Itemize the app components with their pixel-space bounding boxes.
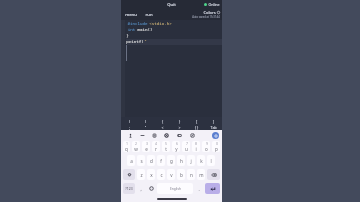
- staticText: n: [190, 172, 193, 178]
- staticText: (: [128, 119, 131, 124]
- staticText: 4: [155, 142, 157, 146]
- button[interactable]: d: [147, 155, 155, 166]
- button[interactable]: (: [121, 118, 137, 124]
- staticText: 0: [216, 142, 218, 146]
- button[interactable]: ;: [121, 124, 137, 130]
- button[interactable]: h: [177, 155, 185, 166]
- button[interactable]: }: [171, 118, 188, 124]
- button[interactable]: n: [187, 169, 195, 180]
- button[interactable]: 6: [172, 141, 180, 152]
- button[interactable]: m: [197, 169, 205, 180]
- staticText: 5: [165, 142, 167, 146]
- staticText: p: [215, 146, 218, 152]
- staticText: k: [200, 158, 203, 164]
- button[interactable]: 1: [123, 141, 130, 152]
- staticText: d: [150, 158, 153, 164]
- staticText: }: [178, 119, 181, 124]
- staticText: 3: [146, 142, 148, 146]
- button[interactable]: s: [137, 155, 145, 166]
- staticText: int: [126, 27, 137, 33]
- staticText: }: [126, 33, 129, 39]
- staticText: 6: [176, 142, 178, 146]
- staticText: e: [145, 146, 148, 152]
- button[interactable]: >: [171, 124, 188, 130]
- button[interactable]: English: [157, 183, 193, 194]
- button[interactable]: v: [167, 169, 175, 180]
- button[interactable]: 9: [202, 141, 210, 152]
- button[interactable]: Stickers: [173, 130, 186, 140]
- button[interactable]: Search: [212, 132, 219, 139]
- button[interactable]: Emoji: [146, 182, 156, 195]
- button[interactable]: Backspace: [207, 169, 220, 180]
- button[interactable]: Period: [194, 182, 204, 195]
- button[interactable]: ?123: [123, 183, 135, 194]
- staticText: {}: [194, 125, 199, 130]
- button[interactable]: 8: [192, 141, 200, 152]
- staticText: h: [180, 158, 183, 164]
- button[interactable]: 2: [132, 141, 140, 152]
- button[interactable]: b: [177, 169, 185, 180]
- button[interactable]: More: [136, 130, 148, 140]
- staticText: .: [198, 186, 200, 192]
- staticText: >: [178, 125, 181, 130]
- button[interactable]: x: [147, 169, 155, 180]
- staticText: ): [144, 119, 147, 124]
- button[interactable]: k: [197, 155, 205, 166]
- button[interactable]: Quit: [164, 1, 179, 9]
- button[interactable]: Clipboard: [148, 130, 160, 140]
- staticText: Quit: [167, 2, 176, 8]
- staticText: Online: [208, 2, 220, 7]
- button[interactable]: 0: [212, 141, 220, 152]
- staticText: g: [170, 158, 173, 164]
- button[interactable]: menu: [123, 11, 139, 19]
- button[interactable]: Translate: [186, 130, 199, 140]
- button[interactable]: c: [157, 169, 165, 180]
- button[interactable]: j: [187, 155, 195, 166]
- staticText: main(): [137, 27, 153, 33]
- staticText: j: [190, 158, 192, 164]
- button[interactable]: 5: [162, 141, 170, 152]
- staticText: o: [205, 146, 208, 152]
- button[interactable]: {: [154, 118, 171, 124]
- button[interactable]: Tab: [205, 124, 222, 130]
- button[interactable]: z: [137, 169, 145, 180]
- staticText: x: [150, 172, 153, 178]
- staticText: Colors: [203, 10, 216, 15]
- staticText: [: [195, 119, 198, 124]
- staticText: printf(: [126, 39, 144, 45]
- staticText: m: [199, 172, 204, 178]
- button[interactable]: ): [137, 118, 154, 124]
- staticText: w: [134, 146, 138, 152]
- staticText: c: [160, 172, 163, 178]
- staticText: q: [125, 146, 128, 152]
- button[interactable]: 7: [182, 141, 190, 152]
- staticText: ": [144, 125, 147, 130]
- staticText: y: [175, 146, 178, 152]
- staticText: 8: [195, 142, 197, 146]
- staticText: ": [144, 39, 147, 45]
- button[interactable]: ]: [205, 118, 222, 124]
- staticText: Auto saved at 15:31:44: [192, 15, 220, 19]
- staticText: #include: [126, 21, 149, 27]
- button[interactable]: 3: [142, 141, 150, 152]
- staticText: v: [170, 172, 173, 178]
- button[interactable]: f: [157, 155, 165, 166]
- button[interactable]: run: [143, 11, 155, 19]
- button[interactable]: Comma: [136, 182, 146, 195]
- button[interactable]: <: [154, 124, 171, 130]
- button[interactable]: g: [167, 155, 175, 166]
- button[interactable]: {}: [188, 124, 205, 130]
- button[interactable]: Shift: [123, 169, 135, 180]
- staticText: menu: [125, 12, 137, 18]
- button[interactable]: 4: [152, 141, 160, 152]
- staticText: r: [155, 146, 157, 152]
- staticText: run: [145, 12, 153, 18]
- staticText: <: [161, 125, 164, 130]
- button[interactable]: Settings: [160, 130, 173, 140]
- button[interactable]: [: [188, 118, 205, 124]
- button[interactable]: ": [137, 124, 154, 130]
- button[interactable]: Voice input: [124, 130, 136, 140]
- button[interactable]: l: [207, 155, 215, 166]
- button[interactable]: a: [127, 155, 135, 166]
- button[interactable]: Enter: [205, 183, 220, 194]
